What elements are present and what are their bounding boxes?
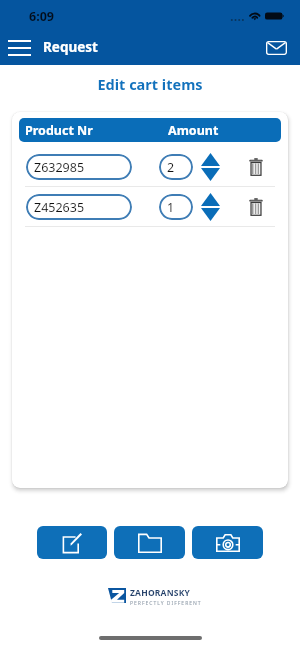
staticText: Z452635: [34, 199, 85, 216]
button[interactable]: 1: [159, 194, 193, 220]
staticText: 1: [167, 199, 175, 216]
staticText: ZAHORANSKY: [130, 587, 191, 599]
staticText: 6:09: [29, 8, 54, 25]
button[interactable]: Delete: [244, 195, 268, 219]
button[interactable]: Edit: [37, 526, 107, 559]
staticText: Z632985: [34, 159, 85, 176]
button[interactable]: Messages: [260, 31, 292, 63]
button[interactable]: Decrease: [201, 168, 220, 181]
button[interactable]: Increase: [201, 193, 220, 206]
button[interactable]: Camera: [192, 526, 263, 559]
button[interactable]: Decrease: [201, 208, 220, 221]
button[interactable]: Menu: [4, 31, 35, 62]
button[interactable]: Files: [114, 526, 185, 559]
button[interactable]: Delete: [244, 155, 268, 179]
staticText: Request: [43, 38, 98, 56]
button[interactable]: Increase: [201, 153, 220, 166]
staticText: Product Nr: [25, 122, 93, 139]
staticText: 2: [167, 159, 175, 176]
staticText: PERFECTLY DIFFERENT: [130, 600, 202, 607]
staticText: Edit cart items: [0, 74, 300, 94]
button[interactable]: Z632985: [26, 154, 132, 180]
button[interactable]: Z452635: [26, 194, 132, 220]
button[interactable]: 2: [159, 154, 193, 180]
staticText: Amount: [168, 122, 219, 139]
